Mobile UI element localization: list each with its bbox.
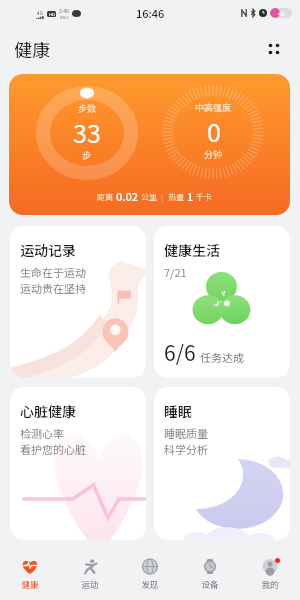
staticText: 距离 [97,191,113,203]
staticText: 热量 [168,191,184,203]
staticText: 7/21 [164,264,187,280]
staticText: 6/6 [164,337,196,367]
button[interactable]: 我的 [240,548,300,600]
staticText: 公里 [141,191,157,203]
staticText: 运动 [81,578,99,590]
staticText: 设备 [201,578,219,590]
button[interactable]: 运动 [60,548,120,600]
staticText: 步数 [78,102,97,115]
staticText: 我的 [261,578,279,590]
staticText: 千卡 [196,191,212,203]
staticText: 中高强度 [195,101,232,114]
staticText: 看护您的心脏 [20,441,86,457]
button[interactable]: More options [258,33,290,65]
staticText: 任务达成 [200,349,244,365]
staticText: 科学分析 [164,441,208,457]
staticText: 健康 [14,36,50,62]
button[interactable]: 步数 [9,74,290,215]
staticText: 3.40 [59,7,69,14]
button[interactable]: 心脏健康 [10,387,146,540]
staticText: 健康生活 [164,240,220,260]
staticText: 4G [37,9,44,16]
button[interactable]: 睡眠 [154,387,290,540]
staticText: 1 [187,188,194,204]
staticText: 心脏健康 [20,401,76,421]
staticText: 运动贵在坚持 [20,280,86,296]
staticText: 16:46 [136,5,165,21]
staticText: HD [49,11,55,17]
staticText: 睡眠质量 [164,425,208,441]
button[interactable]: 设备 [180,548,240,600]
staticText: 33 [73,114,101,150]
button[interactable]: 发现 [120,548,180,600]
staticText: 0.02 [116,188,139,204]
button[interactable]: 健康 [0,548,60,600]
button[interactable]: 运动记录 [10,226,146,378]
staticText: 0 [207,113,221,149]
staticText: 健康 [21,578,39,590]
staticText: 分钟 [204,148,223,161]
staticText: KB/s [60,14,69,20]
staticText: 运动记录 [20,240,76,260]
staticText: 生命在于运动 [20,264,86,280]
staticText: 42 [278,9,285,18]
staticText: 睡眠 [164,401,192,421]
staticText: 发现 [141,578,159,590]
staticText: 步 [82,149,92,162]
button[interactable]: 健康生活 [154,226,290,378]
staticText: 检测心率 [20,425,64,441]
